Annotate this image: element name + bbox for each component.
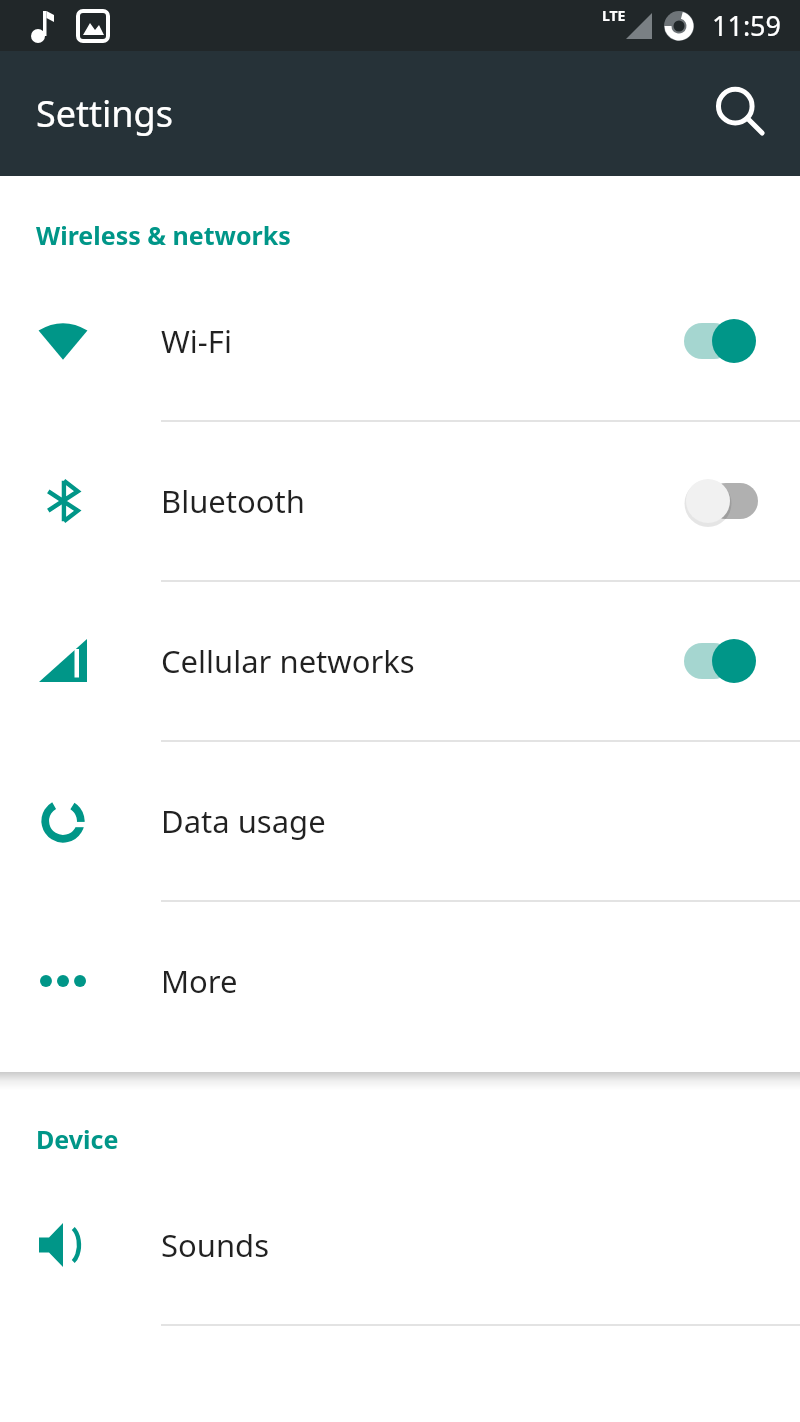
button[interactable]: Data usage — [0, 742, 800, 900]
staticText: Cellular networks — [161, 640, 415, 682]
staticText: More — [161, 960, 238, 1002]
staticText: Sounds — [161, 1224, 270, 1266]
button[interactable]: More — [0, 902, 800, 1060]
staticText: LTE — [602, 6, 626, 25]
staticText: Bluetooth — [161, 480, 305, 522]
staticText: Wireless & networks — [36, 218, 291, 252]
button[interactable]: Bluetooth — [0, 422, 800, 580]
staticText: Settings — [36, 89, 173, 138]
button[interactable]: Off — [680, 472, 760, 530]
button[interactable]: Sounds — [0, 1166, 800, 1324]
button[interactable]: Search — [706, 78, 778, 150]
staticText: 11:59 — [712, 7, 782, 44]
button[interactable]: Cellular networks — [0, 582, 800, 740]
button[interactable]: On — [680, 632, 760, 690]
staticText: Wi-Fi — [161, 320, 232, 362]
staticText: Data usage — [161, 800, 326, 842]
staticText: Device — [36, 1122, 119, 1156]
button[interactable]: Wi-Fi — [0, 262, 800, 420]
button[interactable]: On — [680, 312, 760, 370]
